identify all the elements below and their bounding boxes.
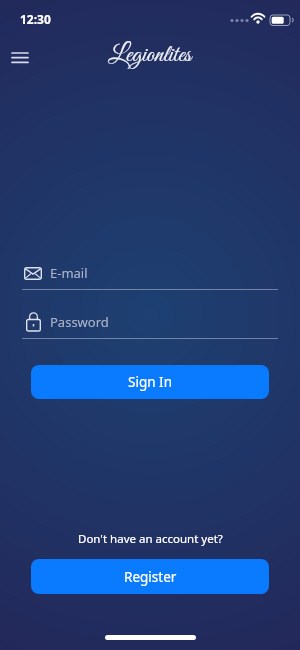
- staticText: E-mail: [50, 264, 88, 282]
- staticText: Register: [124, 568, 177, 586]
- staticText: Password: [50, 313, 109, 331]
- staticText: Don't have an account yet?: [78, 531, 223, 547]
- button[interactable]: Register: [31, 559, 269, 594]
- button[interactable]: [4, 43, 36, 71]
- staticText: 12:30: [20, 11, 51, 27]
- button[interactable]: E-mail: [24, 258, 278, 288]
- staticText: Sign In: [128, 373, 172, 391]
- staticText: Legionlites: [108, 40, 192, 71]
- button[interactable]: Sign In: [31, 365, 269, 399]
- button[interactable]: Password: [24, 307, 278, 337]
